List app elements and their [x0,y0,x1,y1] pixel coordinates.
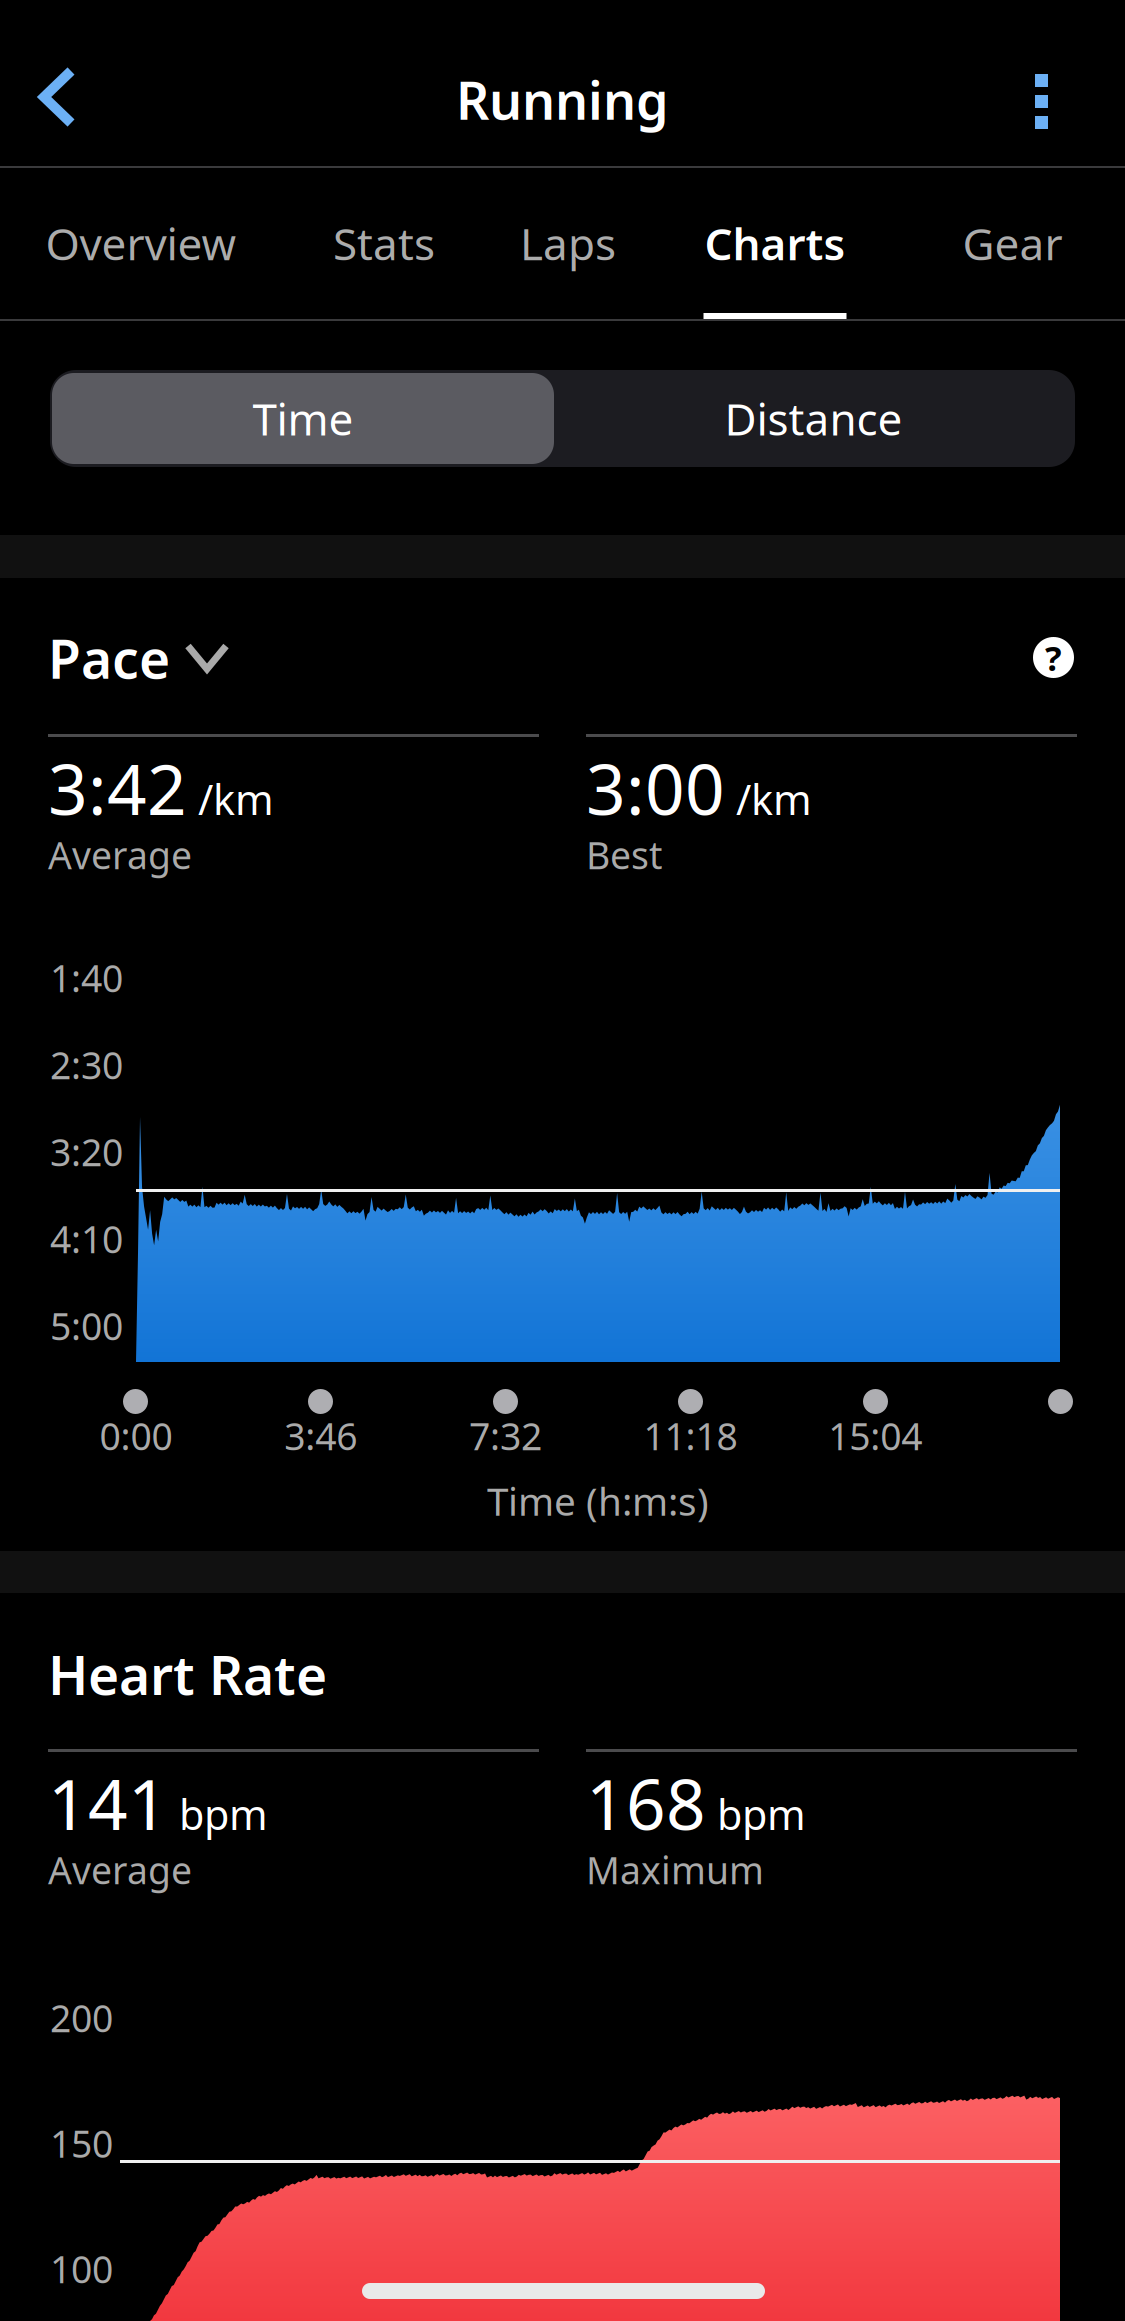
button[interactable]: Stats [282,170,486,319]
staticText: 7:32 [469,1411,542,1461]
staticText: Average [48,830,192,880]
staticText: ? [1045,634,1062,680]
staticText: bpm [717,1786,806,1841]
staticText: 3:42 [48,742,187,834]
staticText: /km [736,771,812,826]
button[interactable]: Help [1033,637,1074,678]
staticText: Best [586,830,662,880]
button[interactable]: Distance [554,373,1073,464]
staticText: Charts [704,214,845,272]
staticText: 4:10 [50,1214,123,1264]
staticText: 141 [48,1757,168,1849]
button[interactable]: Pace [48,622,230,694]
button[interactable]: Time [52,373,554,464]
staticText: 2:30 [50,1040,123,1090]
button[interactable]: Laps [486,170,650,319]
staticText: Stats [333,214,435,272]
staticText: Distance [724,389,902,448]
staticText: bpm [179,1786,268,1841]
staticText: /km [198,771,274,826]
staticText: 11:18 [643,1411,737,1461]
button[interactable]: More options [975,0,1125,166]
button[interactable]: Charts [650,170,900,319]
staticText: 200 [50,1993,113,2043]
staticText: 0:00 [99,1411,172,1461]
staticText: Time (h:m:s) [487,1475,709,1526]
staticText: Running [456,65,669,134]
staticText: Laps [520,214,616,272]
staticText: Time [252,389,353,448]
staticText: 15:04 [828,1411,922,1461]
staticText: 3:46 [284,1411,357,1461]
staticText: 150 [50,2118,113,2168]
button[interactable]: Overview [0,170,282,319]
staticText: 3:20 [50,1127,123,1177]
button[interactable]: Back [0,0,150,166]
staticText: Gear [962,214,1062,272]
staticText: 5:00 [50,1301,123,1351]
button[interactable]: Gear [900,170,1125,319]
staticText: Maximum [586,1845,764,1895]
staticText: Average [48,1845,192,1895]
staticText: Heart Rate [48,1639,327,1710]
staticText: 168 [586,1757,706,1849]
staticText: 100 [50,2244,113,2294]
staticText: Overview [45,214,236,272]
staticText: Pace [48,623,170,693]
staticText: 1:40 [50,953,123,1003]
staticText: 3:00 [586,742,725,834]
